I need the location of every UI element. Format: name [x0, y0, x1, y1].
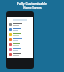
button[interactable]: [7, 42, 33, 47]
button[interactable]: [7, 27, 33, 32]
button[interactable]: [7, 52, 33, 57]
staticText: Home Screen: [23, 6, 42, 10]
staticText: Fully Customisable: [17, 2, 47, 6]
button[interactable]: [7, 32, 33, 37]
button[interactable]: [7, 37, 33, 42]
button[interactable]: [7, 47, 33, 52]
button[interactable]: [7, 22, 33, 27]
